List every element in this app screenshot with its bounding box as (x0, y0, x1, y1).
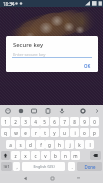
staticText: v (44, 153, 47, 159)
staticText: English (US) (33, 164, 55, 169)
button[interactable]: GIF (28, 105, 39, 116)
staticText: b (54, 153, 57, 159)
staticText: f (40, 142, 42, 148)
staticText: r (35, 130, 37, 136)
staticText: h (58, 142, 61, 148)
button[interactable]: 2 (11, 117, 20, 126)
staticText: Secure key (13, 41, 44, 49)
button[interactable]: x (21, 151, 30, 160)
button[interactable]: h (55, 140, 64, 149)
button[interactable]: 9 (80, 117, 89, 126)
button[interactable]: i (70, 128, 79, 137)
staticText: m (73, 153, 78, 159)
button[interactable]: b (51, 151, 60, 160)
staticText: z (14, 153, 17, 159)
staticText: j (69, 142, 71, 148)
button[interactable]: l (85, 140, 94, 149)
button[interactable]: s (16, 140, 25, 149)
button[interactable]: r (31, 128, 40, 137)
staticText: u (63, 130, 66, 136)
staticText: 9 (83, 119, 86, 125)
staticText: l (89, 142, 91, 148)
staticText: c (34, 153, 37, 159)
button[interactable]: 3 (21, 117, 30, 126)
button[interactable]: Clipboard (42, 105, 53, 116)
button[interactable]: t (40, 128, 49, 137)
button[interactable]: 0 (90, 117, 99, 126)
button[interactable]: k (75, 140, 84, 149)
button[interactable]: Back (19, 174, 31, 183)
button[interactable]: 4 (31, 117, 40, 126)
staticText: Done (84, 164, 96, 170)
button[interactable]: Recents (72, 174, 84, 183)
staticText: d (29, 142, 32, 148)
button[interactable]: !#1 (1, 162, 12, 171)
button[interactable]: p (90, 128, 99, 137)
button[interactable]: Emoji (2, 105, 13, 116)
button[interactable]: q (1, 128, 10, 137)
staticText: w (14, 130, 18, 136)
button[interactable]: 1 (1, 117, 10, 126)
staticText: i (74, 130, 76, 136)
button[interactable]: n (61, 151, 70, 160)
staticText: k (78, 142, 81, 148)
button[interactable]: v (41, 151, 50, 160)
button[interactable]: , (13, 162, 20, 171)
staticText: t (44, 130, 46, 136)
button[interactable]: c (31, 151, 40, 160)
staticText: 6 (53, 119, 56, 125)
staticText: 4 (34, 119, 37, 125)
staticText: o (83, 130, 86, 136)
button[interactable]: Settings (77, 105, 88, 116)
button[interactable]: Voice input (56, 105, 67, 116)
button[interactable]: u (60, 128, 69, 137)
staticText: g (48, 142, 51, 148)
staticText: a (9, 142, 12, 148)
staticText: 1 (4, 119, 7, 125)
staticText: . (71, 164, 73, 170)
button[interactable]: Shift (1, 151, 10, 160)
button[interactable]: English (US) (22, 162, 65, 171)
staticText: e (24, 130, 27, 136)
staticText: 8 (73, 119, 76, 125)
button[interactable]: y (50, 128, 59, 137)
staticText: p (93, 130, 96, 136)
staticText: Enter secure key (13, 52, 46, 58)
button[interactable]: OK (79, 62, 96, 69)
button[interactable]: w (11, 128, 20, 137)
button[interactable]: d (26, 140, 35, 149)
staticText: n (64, 153, 67, 159)
button[interactable]: e (21, 128, 30, 137)
staticText: OK (84, 63, 91, 69)
button[interactable]: 7 (60, 117, 69, 126)
button[interactable]: g (45, 140, 54, 149)
button[interactable]: f (36, 140, 45, 149)
button[interactable]: 8 (70, 117, 79, 126)
staticText: !#1 (3, 164, 10, 170)
staticText: 2 (14, 119, 17, 125)
button[interactable]: 5 (40, 117, 49, 126)
button[interactable]: Sticker (15, 105, 26, 116)
staticText: 18:34 (3, 1, 15, 7)
button[interactable]: Home (46, 174, 58, 183)
button[interactable]: m (71, 151, 80, 160)
button[interactable]: a (6, 140, 15, 149)
staticText: q (4, 130, 7, 136)
button[interactable]: More options (91, 105, 102, 116)
button[interactable]: Backspace (90, 151, 101, 160)
button[interactable]: j (65, 140, 74, 149)
button[interactable]: o (80, 128, 89, 137)
button[interactable]: Done (77, 162, 102, 171)
staticText: , (16, 164, 18, 170)
staticText: y (53, 130, 56, 136)
staticText: 7 (63, 119, 66, 125)
button[interactable]: z (11, 151, 20, 160)
staticText: 5 (43, 119, 46, 125)
staticText: s (19, 142, 22, 148)
button[interactable]: 6 (50, 117, 59, 126)
staticText: 0 (93, 119, 96, 125)
staticText: 3 (24, 119, 27, 125)
staticText: x (24, 153, 27, 159)
button[interactable]: . (68, 162, 75, 171)
